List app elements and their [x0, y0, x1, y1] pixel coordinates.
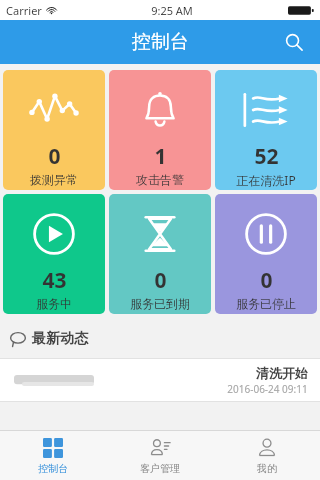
button[interactable]: 0	[215, 194, 317, 314]
staticText: Carrier	[6, 3, 42, 18]
staticText: 客户管理	[140, 462, 180, 475]
staticText: 我的	[257, 462, 277, 475]
button[interactable]: 0	[109, 194, 211, 314]
button[interactable]: 控制台	[0, 431, 106, 480]
staticText: 控制台	[38, 462, 68, 475]
button[interactable]: 1	[109, 70, 211, 190]
button[interactable]: 客户管理	[106, 431, 213, 480]
staticText: 0	[260, 266, 273, 295]
staticText: 0	[48, 142, 61, 171]
button[interactable]: 52	[215, 70, 317, 190]
staticText: 2016-06-24 09:11	[227, 382, 308, 396]
button[interactable]: Search	[278, 26, 310, 58]
staticText: 攻击告警	[136, 172, 184, 187]
button[interactable]: 0	[3, 70, 105, 190]
staticText: 9:25 AM	[151, 3, 193, 18]
staticText: 0	[154, 266, 167, 295]
staticText: 拨测异常	[30, 172, 78, 187]
staticText: 最新动态	[32, 330, 88, 348]
staticText: 43	[42, 266, 67, 295]
button[interactable]: 我的	[213, 431, 320, 480]
staticText: 服务已到期	[130, 296, 190, 311]
staticText: 服务中	[36, 296, 72, 311]
button[interactable]: 清洗开始	[0, 359, 320, 401]
staticText: 1	[154, 142, 167, 171]
staticText: 正在清洗IP	[236, 172, 296, 188]
staticText: 控制台	[132, 30, 189, 54]
staticText: 清洗开始	[256, 365, 308, 381]
staticText: 服务已停止	[236, 296, 296, 311]
button[interactable]: 43	[3, 194, 105, 314]
staticText: 52	[254, 142, 279, 171]
